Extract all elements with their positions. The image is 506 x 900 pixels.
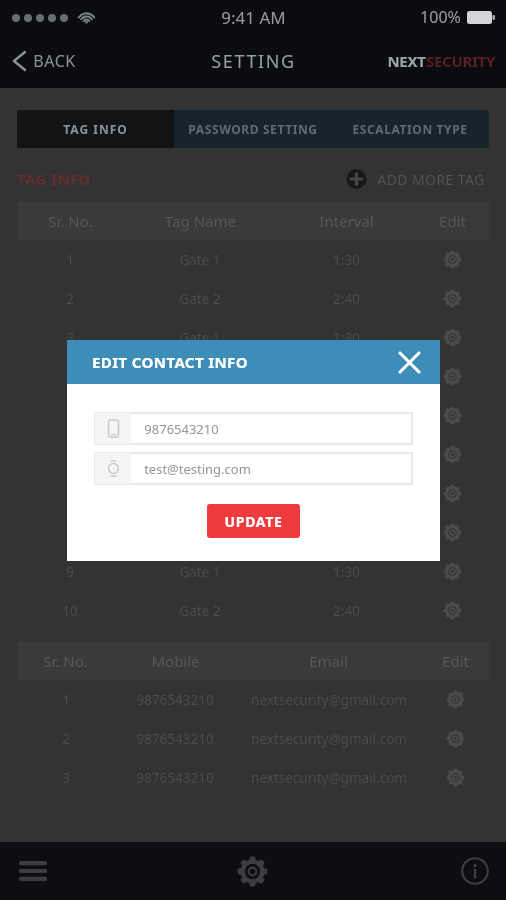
staticText: TAG INFO xyxy=(63,121,128,137)
staticText: 3 xyxy=(62,769,70,787)
other: Edit xyxy=(421,719,489,758)
staticText: 100% xyxy=(420,6,461,28)
staticText: 9:41 AM xyxy=(221,6,286,29)
staticText: 9 xyxy=(66,563,74,581)
staticText: Edit xyxy=(442,651,469,671)
staticText: NEXT xyxy=(387,51,426,71)
button[interactable]: UPDATE xyxy=(207,504,300,538)
staticText: SECURITY xyxy=(426,51,495,71)
button[interactable]: 9 xyxy=(17,552,489,591)
staticText: 9876543210 xyxy=(136,691,214,709)
button[interactable]: 8 xyxy=(17,513,489,552)
button[interactable]: 2 xyxy=(17,719,489,758)
staticText: nextsecurity@gmail.com xyxy=(251,730,407,748)
button[interactable]: 10 xyxy=(17,591,489,630)
button[interactable]: 3 xyxy=(17,318,489,357)
staticText: 9876543210 xyxy=(136,730,214,748)
staticText: 7 xyxy=(66,485,74,503)
staticText: EDIT CONTACT INFO xyxy=(92,352,248,372)
button[interactable]: ESCALATION TYPE xyxy=(331,110,489,148)
other: Edit xyxy=(415,552,489,591)
staticText: 1 xyxy=(66,251,74,269)
staticText: Gate 2 xyxy=(179,368,221,386)
other: Edit xyxy=(421,758,489,797)
staticText: Gate 2 xyxy=(179,524,221,542)
staticText: BACK xyxy=(33,50,76,72)
staticText: 2 xyxy=(66,290,74,308)
staticText: 9876543210 xyxy=(144,420,219,438)
staticText: 2:40 xyxy=(333,602,360,620)
staticText: 3 xyxy=(66,329,74,347)
staticText: 9876543210 xyxy=(136,769,214,787)
button[interactable]: 4 xyxy=(17,357,489,396)
staticText: ADD MORE TAG xyxy=(377,170,485,189)
button[interactable]: test@testing.com xyxy=(95,453,412,484)
button[interactable]: 3 xyxy=(17,758,489,797)
staticText: nextsecurity@gmail.com xyxy=(251,769,407,787)
other: Edit xyxy=(415,357,489,396)
staticText: UPDATE xyxy=(224,512,283,531)
staticText: test@testing.com xyxy=(144,460,251,478)
staticText: Gate 1 xyxy=(179,407,221,425)
button[interactable]: Next Security logo xyxy=(387,51,495,71)
staticText: 4 xyxy=(66,368,74,386)
staticText: 10 xyxy=(62,602,78,620)
staticText: 8 xyxy=(66,524,74,542)
button[interactable]: 2 xyxy=(17,279,489,318)
other: Edit xyxy=(421,680,489,719)
button[interactable]: Close xyxy=(392,345,426,379)
staticText: Gate 1 xyxy=(179,329,221,347)
button[interactable]: 9876543210 xyxy=(95,413,412,444)
button[interactable]: 5 xyxy=(17,396,489,435)
staticText: PASSWORD SETTING xyxy=(188,121,318,137)
other: Edit xyxy=(415,513,489,552)
staticText: nextsecurity@gmail.com xyxy=(251,691,407,709)
staticText: 2:40 xyxy=(333,368,360,386)
button[interactable]: 1 xyxy=(17,680,489,719)
button[interactable]: Info xyxy=(337,842,506,900)
staticText: Gate 2 xyxy=(179,446,221,464)
other: Edit xyxy=(415,474,489,513)
staticText: TAG INFO xyxy=(17,169,91,189)
other: Edit xyxy=(415,318,489,357)
button[interactable]: 6 xyxy=(17,435,489,474)
staticText: Gate 2 xyxy=(179,290,221,308)
staticText: Interval xyxy=(319,211,374,231)
staticText: Sr. No. xyxy=(48,211,93,231)
staticText: Gate 1 xyxy=(179,251,221,269)
other: Edit xyxy=(415,591,489,630)
staticText: Gate 2 xyxy=(179,602,221,620)
other: Edit xyxy=(415,396,489,435)
staticText: Edit xyxy=(439,211,466,231)
staticText: Sr. No. xyxy=(43,651,88,671)
staticText: 6 xyxy=(66,446,74,464)
other: Edit xyxy=(415,240,489,279)
other: Edit xyxy=(415,435,489,474)
button[interactable]: 7 xyxy=(17,474,489,513)
staticText: SETTING xyxy=(211,49,296,74)
staticText: 1:30 xyxy=(333,251,360,269)
button[interactable]: Settings xyxy=(168,842,337,900)
staticText: Mobile xyxy=(151,651,200,671)
staticText: Tag Name xyxy=(165,211,236,231)
staticText: Gate 1 xyxy=(179,563,221,581)
button[interactable]: ADD MORE TAG xyxy=(340,165,489,193)
staticText: 5 xyxy=(66,407,74,425)
staticText: Email xyxy=(309,651,348,671)
staticText: 2:40 xyxy=(333,290,360,308)
staticText: ESCALATION TYPE xyxy=(352,121,468,137)
staticText: 2:40 xyxy=(333,446,360,464)
button[interactable]: Menu xyxy=(0,842,168,900)
staticText: 1:30 xyxy=(333,329,360,347)
button[interactable]: PASSWORD SETTING xyxy=(174,110,331,148)
staticText: 2 xyxy=(62,730,70,748)
staticText: 1:30 xyxy=(333,407,360,425)
button[interactable]: BACK xyxy=(0,34,92,88)
other: Edit xyxy=(415,279,489,318)
button[interactable]: 1 xyxy=(17,240,489,279)
button[interactable]: TAG INFO xyxy=(17,110,174,148)
staticText: 1 xyxy=(62,691,70,709)
